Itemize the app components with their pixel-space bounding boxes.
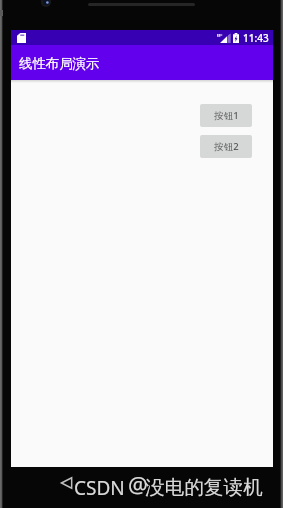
staticText: 没电的复读机 bbox=[145, 475, 263, 500]
staticText: 按钮2 bbox=[214, 140, 239, 153]
button[interactable]: 按钮1 bbox=[200, 104, 252, 127]
button[interactable]: 按钮2 bbox=[200, 135, 252, 158]
staticText: 11:43 bbox=[243, 31, 269, 45]
staticText: @ bbox=[128, 469, 148, 499]
staticText: 线性布局演示 bbox=[19, 55, 100, 72]
staticText: 按钮1 bbox=[214, 109, 239, 122]
staticText: CSDN bbox=[74, 475, 125, 501]
